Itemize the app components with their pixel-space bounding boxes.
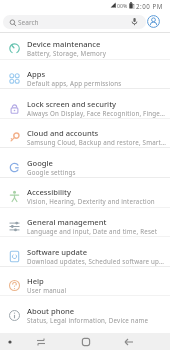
staticText: Help <box>27 276 44 286</box>
button[interactable]: About phone <box>0 296 170 326</box>
button[interactable]: Cloud and accounts <box>0 118 170 148</box>
staticText: Device maintenance <box>27 39 101 49</box>
staticText: Language and input, Date and time, Reset <box>27 227 158 235</box>
button[interactable] <box>78 334 94 350</box>
button[interactable]: Apps <box>0 59 170 89</box>
staticText: Battery, Storage, Memory <box>27 49 107 57</box>
staticText: Status, Legal information, Device name <box>27 316 149 324</box>
button[interactable] <box>33 334 49 350</box>
staticText: Software update <box>27 247 88 257</box>
staticText: Samsung Cloud, Backup and restore, Smart… <box>27 138 166 146</box>
button[interactable]: Accessibility <box>0 177 170 207</box>
button[interactable]: Search <box>0 14 170 32</box>
staticText: Cloud and accounts <box>27 128 99 138</box>
staticText: Lock screen and security <box>27 99 117 109</box>
staticText: Accessibility <box>27 187 71 197</box>
staticText: Default apps, App permissions <box>27 79 122 87</box>
staticText: User manual <box>27 286 67 294</box>
staticText: 12:00 PM <box>132 2 163 10</box>
staticText: Search <box>18 18 39 27</box>
button[interactable]: Lock screen and security <box>0 89 170 119</box>
staticText: Google <box>27 158 53 168</box>
button[interactable]: Software update <box>0 237 170 267</box>
button[interactable]: Google <box>0 148 170 178</box>
staticText: Vision, Hearing, Dexterity and interacti… <box>27 197 155 205</box>
staticText: About phone <box>27 306 75 316</box>
button[interactable]: Device maintenance <box>0 29 170 59</box>
staticText: General management <box>27 217 107 227</box>
button[interactable] <box>147 15 160 28</box>
staticText: Download updates, Scheduled software upd… <box>27 257 166 265</box>
button[interactable] <box>121 334 137 350</box>
button[interactable]: Help <box>0 266 170 296</box>
button[interactable]: General management <box>0 207 170 237</box>
staticText: Google settings <box>27 168 76 176</box>
staticText: Always On Display, Face Recognition, Fin… <box>27 109 166 117</box>
staticText: Apps <box>27 69 46 79</box>
staticText: 100% <box>114 2 128 9</box>
